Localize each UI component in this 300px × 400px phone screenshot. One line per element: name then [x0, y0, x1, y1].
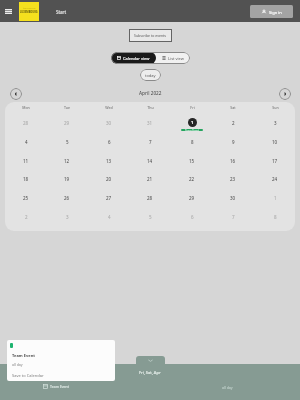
staticText: 9: [232, 139, 235, 145]
button[interactable]: Luxembourg logo: [19, 2, 39, 21]
button[interactable]: Menu: [3, 6, 14, 17]
staticText: Calendar view: [123, 56, 150, 61]
button[interactable]: Team Event: [43, 384, 69, 389]
staticText: 2: [232, 120, 235, 126]
button[interactable]: today: [140, 69, 161, 81]
staticText: 3: [66, 214, 69, 220]
staticText: Subscribe to events: [134, 33, 167, 38]
staticText: 23: [230, 176, 236, 182]
staticText: Tue: [64, 105, 70, 109]
staticText: Mon: [22, 105, 30, 109]
staticText: List view: [168, 56, 184, 61]
staticText: 12: [64, 158, 70, 164]
staticText: 20: [106, 176, 112, 182]
staticText: Start: [56, 9, 67, 15]
staticText: 29: [189, 195, 195, 201]
staticText: 30: [106, 120, 112, 126]
staticText: 14: [147, 158, 153, 164]
staticText: 4: [108, 214, 111, 220]
staticText: 1: [191, 120, 194, 125]
button[interactable]: Calendar view: [111, 52, 156, 64]
staticText: 6: [191, 214, 194, 220]
button[interactable]: List view: [156, 52, 190, 64]
staticText: 4: [25, 139, 28, 145]
staticText: Sat: [230, 105, 236, 109]
staticText: 25: [23, 195, 29, 201]
staticText: Fri, Sat, Apr: [139, 370, 161, 375]
staticText: Thu: [147, 105, 154, 109]
staticText: 19: [64, 176, 70, 182]
button[interactable]: Collapse panel: [136, 356, 165, 365]
button[interactable]: Save to Calendar: [12, 373, 44, 378]
staticText: Sun: [272, 105, 279, 109]
staticText: 7: [149, 139, 152, 145]
staticText: 16: [230, 158, 236, 164]
staticText: 28: [23, 120, 29, 126]
staticText: 5: [66, 139, 69, 145]
staticText: 11: [23, 158, 29, 164]
staticText: all day: [12, 362, 23, 367]
staticText: April 2022: [139, 90, 162, 96]
staticText: Fri: [190, 105, 195, 109]
staticText: 31: [147, 120, 153, 126]
staticText: 28: [147, 195, 153, 201]
button[interactable]: Sign in: [250, 5, 293, 18]
staticText: today: [145, 73, 156, 78]
staticText: 30: [230, 195, 236, 201]
staticText: 8: [274, 214, 277, 220]
staticText: Sign in: [269, 10, 282, 15]
staticText: 13: [106, 158, 112, 164]
staticText: 10: [272, 139, 278, 145]
staticText: Team Event: [185, 129, 200, 131]
staticText: 3: [274, 120, 277, 126]
staticText: 17: [272, 158, 278, 164]
staticText: 5: [149, 214, 152, 220]
button[interactable]: Previous month: [10, 88, 22, 100]
staticText: 8: [191, 139, 194, 145]
staticText: 2: [25, 214, 28, 220]
staticText: Team Event: [12, 353, 35, 358]
staticText: Team Event: [50, 384, 69, 389]
staticText: Wed: [105, 105, 113, 109]
staticText: 27: [106, 195, 112, 201]
staticText: 24: [272, 176, 278, 182]
staticText: 1: [274, 195, 277, 201]
staticText: 22: [189, 176, 195, 182]
staticText: LUXEMBOURG: [20, 10, 38, 13]
staticText: 29: [64, 120, 70, 126]
staticText: 15: [189, 158, 195, 164]
button[interactable]: Next month: [279, 88, 291, 100]
staticText: all day: [222, 385, 233, 390]
staticText: 21: [147, 176, 153, 182]
button[interactable]: Subscribe to events: [129, 29, 172, 42]
staticText: 6: [108, 139, 111, 145]
staticText: 18: [23, 176, 29, 182]
staticText: 26: [64, 195, 70, 201]
staticText: the Land of: [23, 7, 36, 10]
staticText: 7: [232, 214, 235, 220]
